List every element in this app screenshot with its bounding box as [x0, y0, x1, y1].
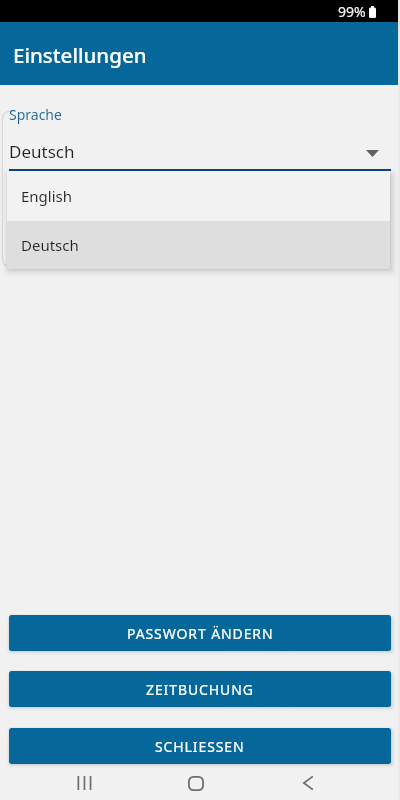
- button[interactable]: PASSWORT ÄNDERN: [9, 615, 391, 651]
- staticText: Einstellungen: [13, 41, 147, 69]
- staticText: Sprache: [9, 105, 62, 124]
- button[interactable]: Deutsch: [9, 136, 379, 167]
- button[interactable]: Deutsch: [7, 221, 390, 269]
- staticText: SCHLIESSEN: [155, 737, 245, 756]
- staticText: ZEITBUCHUNG: [146, 680, 254, 699]
- button[interactable]: Home: [168, 765, 224, 800]
- button[interactable]: ZEITBUCHUNG: [9, 671, 391, 707]
- staticText: PASSWORT ÄNDERN: [127, 624, 274, 643]
- staticText: Deutsch: [21, 235, 79, 255]
- staticText: Deutsch: [9, 140, 75, 163]
- button[interactable]: English: [7, 171, 390, 221]
- staticText: 99%: [338, 2, 366, 21]
- staticText: English: [21, 186, 73, 206]
- button[interactable]: SCHLIESSEN: [9, 728, 391, 764]
- button[interactable]: Back: [279, 765, 336, 800]
- button[interactable]: Recents: [55, 765, 112, 800]
